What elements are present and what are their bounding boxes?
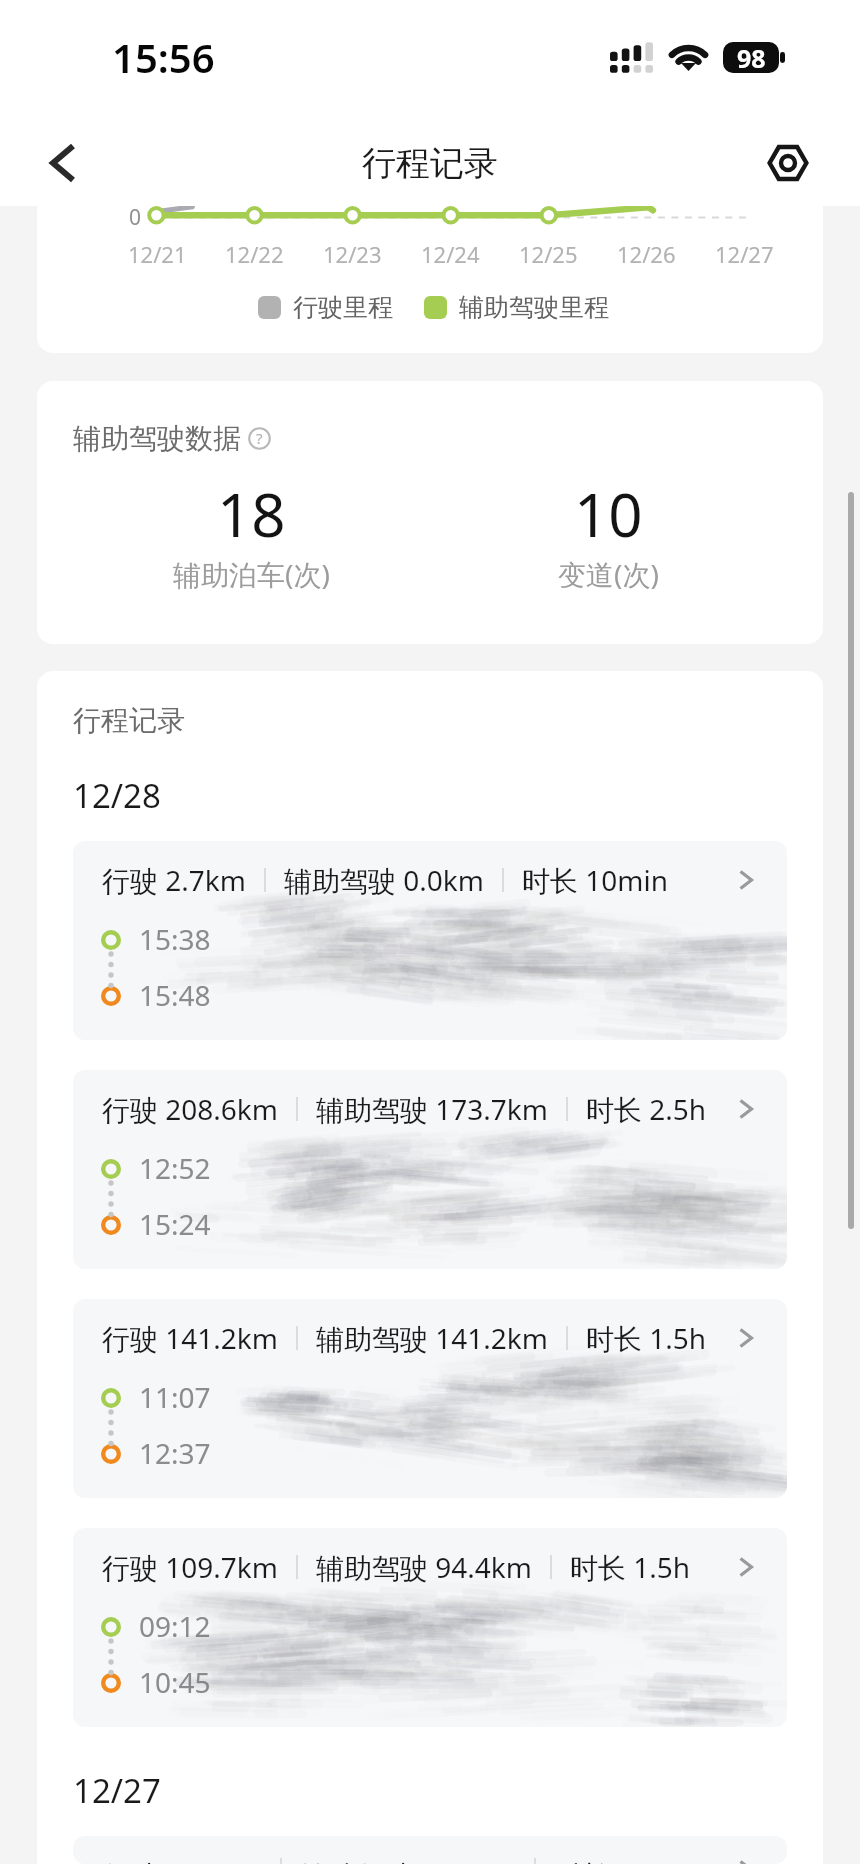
staticText: 10:45 [139,1663,211,1701]
button[interactable]: Settings [752,127,824,199]
staticText: 12/28 [73,773,161,818]
staticText: 辅助驾驶 0.0km [284,861,484,899]
staticText: 10 [574,473,643,555]
staticText: 时长 1.2h [554,1856,675,1864]
staticText: 辅助驾驶里程 [459,292,609,323]
staticText: 98 [737,42,766,72]
staticText: 时长 1.5h [570,1548,691,1586]
staticText: 行驶 109.7km [102,1548,278,1586]
staticText: 15:24 [139,1205,211,1243]
staticText: 行程记录 [73,703,185,738]
staticText: 辅助驾驶数据 [73,421,241,456]
staticText: 行程记录 [362,142,498,185]
staticText: 15:48 [139,976,211,1014]
button[interactable]: 行驶 109.7km [73,1528,787,1727]
button[interactable]: Back [27,127,99,199]
staticText: 行驶 208.6km [102,1090,278,1128]
staticText: 15:38 [139,920,211,958]
button[interactable]: 行驶 141.2km [73,1299,787,1498]
staticText: 18 [217,473,286,555]
staticText: 行驶 141.2km [102,1319,278,1357]
staticText: 12:52 [139,1149,211,1187]
staticText: 09:12 [139,1607,211,1645]
staticText: 0 [129,206,142,232]
staticText: 12:37 [139,1434,211,1472]
staticText: 12/22 [225,239,284,269]
staticText: 12/27 [73,1768,161,1813]
staticText: 辅助驾驶 141.2km [316,1319,548,1357]
staticText: 行驶 73.1km [102,1856,262,1864]
staticText: 行驶 2.7km [102,861,246,899]
button[interactable]: 行驶 73.1km [73,1836,787,1864]
staticText: 辅助驾驶 173.7km [316,1090,548,1128]
staticText: 12/23 [323,239,382,269]
staticText: 12/26 [617,239,676,269]
staticText: 时长 1.5h [586,1319,707,1357]
staticText: 变道(次) [558,555,659,593]
staticText: 12/25 [519,239,578,269]
staticText: 11:07 [139,1378,211,1416]
button[interactable]: 行驶 208.6km [73,1070,787,1269]
staticText: 15:56 [112,30,215,84]
staticText: 辅助驾驶 51.0km [300,1856,516,1864]
staticText: 行驶里程 [293,292,393,323]
button[interactable]: 行驶 2.7km [73,841,787,1040]
staticText: 辅助驾驶 94.4km [316,1548,532,1586]
staticText: 时长 10min [522,861,669,899]
staticText: 时长 2.5h [586,1090,707,1128]
staticText: 12/24 [421,239,480,269]
staticText: 12/21 [128,239,187,269]
staticText: 12/27 [715,239,774,269]
staticText: ? [256,428,263,448]
staticText: 辅助泊车(次) [173,555,330,593]
